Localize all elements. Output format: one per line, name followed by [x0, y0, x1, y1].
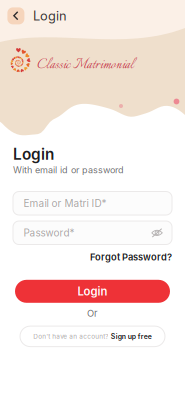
staticText: Forgot Password? — [90, 251, 172, 263]
staticText: With email id or password — [13, 165, 124, 176]
button[interactable]: Don't have an account? — [20, 326, 165, 347]
button[interactable]: Back — [7, 7, 24, 24]
staticText: Login — [13, 145, 54, 164]
staticText: Email or Matri ID* — [23, 197, 106, 209]
staticText: Login — [77, 284, 107, 298]
staticText: Sign up free — [111, 332, 152, 341]
staticText: Don't have an account? — [33, 332, 108, 340]
staticText: Login — [33, 8, 67, 24]
button[interactable]: Forgot Password? — [90, 251, 172, 263]
staticText: Password* — [23, 227, 74, 239]
button[interactable]: Login — [15, 280, 170, 303]
staticText: Classic Matrimonial — [37, 54, 134, 76]
staticText: Or — [87, 308, 98, 319]
